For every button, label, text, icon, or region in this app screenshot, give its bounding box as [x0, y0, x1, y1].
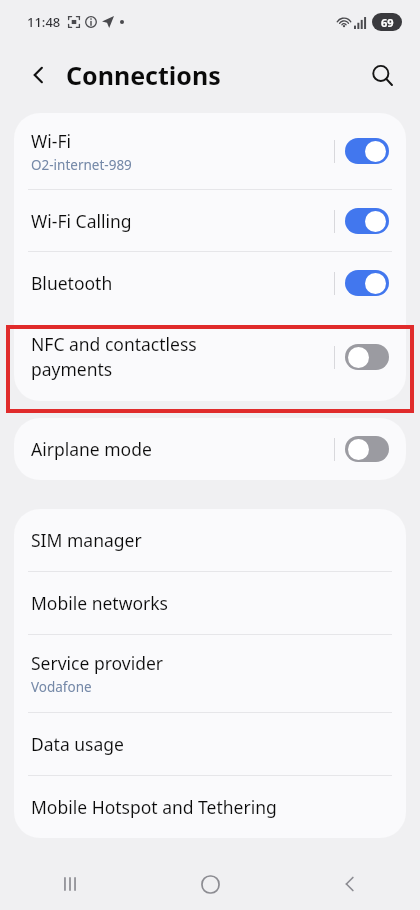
staticText: Mobile Hotspot and Tethering	[31, 795, 277, 819]
staticText: 69	[381, 15, 394, 30]
button[interactable]: Search	[362, 55, 402, 95]
button[interactable]: Recents	[0, 858, 140, 910]
button[interactable]: Back	[22, 58, 56, 92]
staticText: O2-internet-989	[31, 156, 132, 174]
button[interactable]: Bluetooth	[14, 252, 406, 313]
button[interactable]: NFC and contactless payments	[14, 313, 406, 401]
staticText: Data usage	[31, 732, 124, 756]
staticText: NFC and contactless payments	[31, 332, 334, 382]
staticText: Airplane mode	[31, 437, 152, 461]
button[interactable]: Wi-Fi Calling	[14, 190, 406, 251]
button[interactable]: Wi-Fi	[14, 113, 406, 189]
button[interactable]: Off	[345, 344, 389, 370]
button[interactable]: Back	[280, 858, 420, 910]
button[interactable]: Off	[345, 436, 389, 462]
staticText: Bluetooth	[31, 271, 113, 295]
button[interactable]: SIM manager	[14, 509, 406, 571]
staticText: Service provider	[31, 651, 164, 675]
staticText: Wi-Fi	[31, 129, 72, 153]
button[interactable]: On	[345, 138, 389, 164]
button[interactable]: Service provider	[14, 635, 406, 712]
button[interactable]: Data usage	[14, 713, 406, 775]
button[interactable]: On	[345, 270, 389, 296]
button[interactable]: Mobile Hotspot and Tethering	[14, 776, 406, 838]
staticText: SIM manager	[31, 528, 142, 552]
staticText: Vodafone	[31, 678, 92, 696]
staticText: Mobile networks	[31, 591, 168, 615]
button[interactable]: Airplane mode	[14, 418, 406, 480]
staticText: Wi-Fi Calling	[31, 209, 132, 233]
staticText: Connections	[66, 58, 221, 92]
button[interactable]: Home	[140, 858, 280, 910]
button[interactable]: Mobile networks	[14, 572, 406, 634]
staticText: 11:48	[27, 13, 61, 31]
button[interactable]: On	[345, 208, 389, 234]
